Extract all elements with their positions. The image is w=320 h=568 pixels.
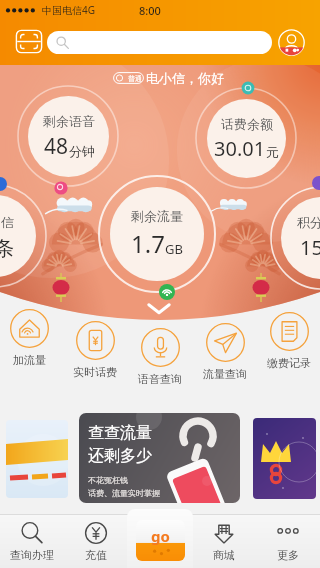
- staticText: 语音查询: [138, 372, 182, 386]
- staticText: 元: [266, 144, 279, 160]
- staticText: 缴费记录: [267, 356, 311, 370]
- button[interactable]: [47, 31, 272, 54]
- staticText: 更多: [277, 548, 299, 562]
- staticText: 1580: [300, 234, 320, 261]
- staticText: 48: [44, 132, 69, 161]
- button[interactable]: 更多: [256, 514, 320, 568]
- button[interactable]: 流量查询: [194, 323, 256, 381]
- staticText: go: [151, 526, 170, 546]
- button[interactable]: [128, 514, 192, 568]
- button[interactable]: Network status: [159, 284, 175, 300]
- button[interactable]: Account: [278, 29, 305, 56]
- button[interactable]: Scan: [15, 29, 43, 54]
- staticText: 查查流量: [88, 423, 152, 443]
- staticText: 查询办理: [10, 548, 54, 562]
- button[interactable]: 查查流量: [79, 413, 240, 503]
- staticText: 积分余额: [297, 214, 320, 230]
- staticText: 普通: [128, 74, 142, 83]
- staticText: 剩余流量: [131, 208, 183, 224]
- staticText: 剩余语音: [43, 113, 95, 129]
- button[interactable]: 加流量: [0, 309, 60, 367]
- staticText: 分钟: [69, 143, 95, 159]
- staticText: 8:00: [139, 3, 161, 18]
- staticText: 流量查询: [203, 367, 247, 381]
- button[interactable]: 剩余流量: [110, 187, 204, 281]
- staticText: 加流量: [13, 353, 46, 367]
- staticText: GB: [165, 240, 183, 258]
- staticText: 30.01: [214, 135, 266, 162]
- staticText: 实时话费: [73, 365, 117, 379]
- staticText: 不花冤枉钱: [88, 475, 128, 485]
- button[interactable]: 话费余额: [207, 99, 286, 178]
- staticText: 电小信，你好: [146, 70, 224, 86]
- staticText: 剩余短信: [0, 214, 14, 230]
- button[interactable]: 充值: [64, 514, 128, 568]
- staticText: 120条: [0, 234, 15, 261]
- staticText: 还剩多少: [88, 446, 152, 466]
- button[interactable]: 缴费记录: [258, 312, 320, 370]
- button[interactable]: [253, 418, 316, 499]
- button[interactable]: 查询办理: [0, 514, 64, 568]
- staticText: 中国电信4G: [42, 3, 95, 17]
- staticText: 1.7: [131, 227, 165, 260]
- button[interactable]: go: [136, 520, 185, 561]
- button[interactable]: 剩余语音: [28, 96, 109, 177]
- staticText: 话费、流量实时掌握: [88, 488, 160, 498]
- staticText: 充值: [85, 548, 107, 562]
- staticText: 话费余额: [221, 116, 273, 132]
- button[interactable]: 实时话费: [64, 321, 126, 379]
- staticText: 商城: [213, 548, 235, 562]
- button[interactable]: 商城: [192, 514, 256, 568]
- button[interactable]: 语音查询: [129, 328, 191, 386]
- button[interactable]: [6, 420, 68, 498]
